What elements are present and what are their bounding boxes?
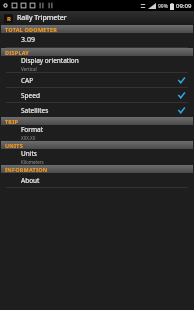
staticText: R bbox=[7, 15, 11, 23]
staticText: DISPLAY bbox=[5, 49, 30, 56]
button[interactable]: CAP bbox=[0, 73, 194, 87]
staticText: About bbox=[21, 176, 40, 185]
other: Enabled bbox=[176, 105, 186, 115]
button[interactable]: R bbox=[4, 12, 67, 24]
button[interactable]: Speed bbox=[0, 88, 194, 102]
staticText: Units bbox=[21, 149, 37, 158]
staticText: 99% bbox=[158, 3, 168, 10]
button[interactable]: Satellites bbox=[0, 103, 194, 117]
staticText: 3.09 bbox=[21, 35, 35, 45]
staticText: Rally Tripmeter bbox=[17, 13, 67, 23]
staticText: Satellites bbox=[21, 106, 49, 115]
staticText: Format bbox=[21, 125, 44, 134]
button[interactable]: About bbox=[0, 173, 194, 187]
staticText: XXX.XX bbox=[21, 135, 36, 141]
button[interactable]: Format bbox=[0, 125, 194, 141]
staticText: TRIP bbox=[5, 118, 19, 125]
button[interactable]: Units bbox=[0, 149, 194, 165]
button[interactable]: Display orientation bbox=[0, 56, 194, 72]
other: Enabled bbox=[176, 90, 186, 100]
button[interactable]: 3.09 bbox=[0, 33, 194, 47]
other: Enabled bbox=[176, 75, 186, 85]
staticText: Kilometers bbox=[21, 159, 44, 165]
staticText: Vertical bbox=[21, 66, 37, 72]
staticText: CAP bbox=[21, 76, 34, 85]
staticText: Display orientation bbox=[21, 56, 79, 65]
staticText: 09:09 bbox=[176, 2, 192, 10]
staticText: UNITS bbox=[5, 142, 23, 149]
staticText: INFORMATION bbox=[5, 166, 48, 173]
staticText: TOTAL ODOMETER bbox=[5, 26, 58, 33]
staticText: Speed bbox=[21, 91, 40, 100]
